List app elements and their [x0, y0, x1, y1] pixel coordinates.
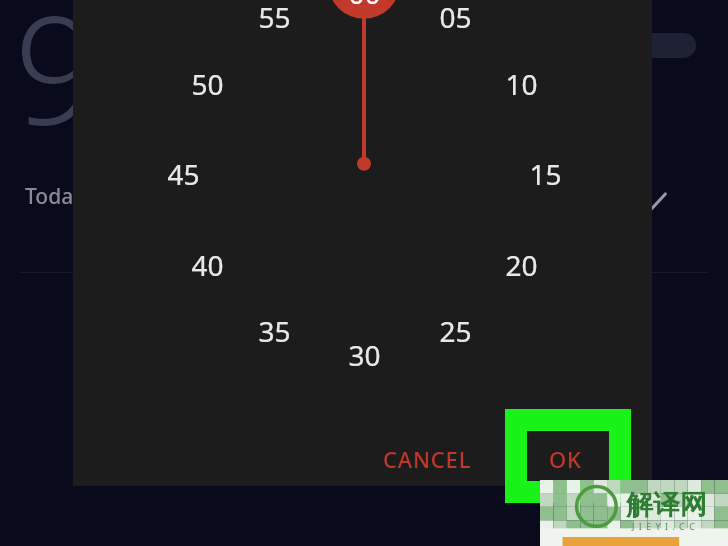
staticText: 50 — [191, 65, 224, 103]
staticText: 35 — [258, 312, 291, 350]
staticText: J I E Y I . C C — [632, 520, 696, 532]
staticText: 00 — [348, 0, 381, 12]
button[interactable]: 00 — [336, 0, 392, 13]
button[interactable]: 50 — [179, 64, 235, 104]
button[interactable]: 20 — [493, 245, 549, 285]
button[interactable]: 40 — [179, 245, 235, 285]
staticText: 解译网 — [626, 488, 707, 522]
staticText: 9 — [14, 0, 100, 168]
staticText: OK — [549, 444, 582, 474]
button[interactable]: CANCEL — [364, 437, 490, 481]
button[interactable]: 10 — [493, 64, 549, 104]
staticText: 15 — [529, 155, 562, 193]
button[interactable]: OK — [530, 437, 600, 481]
staticText: 30 — [348, 336, 381, 374]
staticText: 55 — [258, 0, 291, 36]
button[interactable]: 55 — [246, 0, 302, 37]
staticText: 05 — [439, 0, 472, 36]
staticText: Today — [25, 182, 85, 211]
button[interactable]: 45 — [155, 154, 211, 194]
button[interactable]: 05 — [427, 0, 483, 37]
button[interactable]: 15 — [517, 154, 573, 194]
staticText: 10 — [505, 65, 538, 103]
button[interactable] — [640, 33, 696, 58]
staticText: CANCEL — [383, 444, 472, 474]
button[interactable]: Edit — [648, 190, 676, 218]
button[interactable]: 25 — [427, 311, 483, 351]
staticText: 25 — [439, 312, 472, 350]
button[interactable]: 35 — [246, 311, 302, 351]
staticText: 45 — [167, 155, 200, 193]
staticText: 20 — [505, 246, 538, 284]
staticText: 40 — [191, 246, 224, 284]
button[interactable]: 30 — [336, 335, 392, 375]
